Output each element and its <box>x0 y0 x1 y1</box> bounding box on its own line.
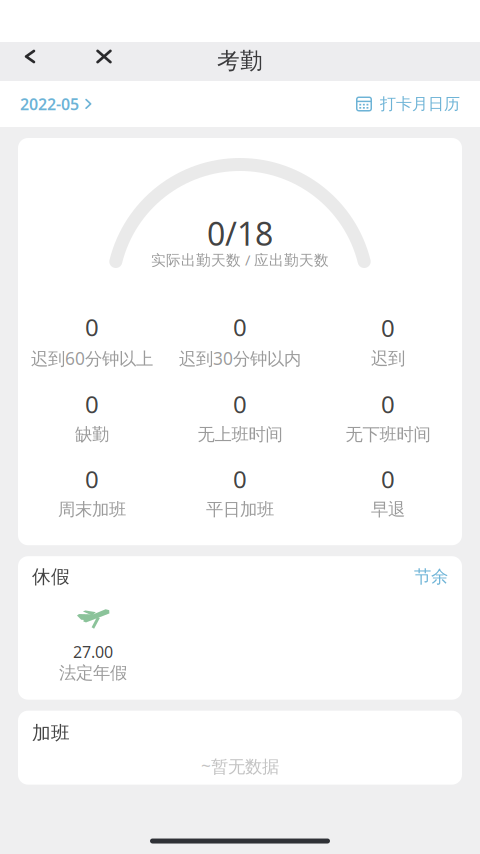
staticText: 法定年假 <box>59 662 127 684</box>
staticText: ~暂无数据 <box>201 755 279 778</box>
staticText: 0 <box>381 388 395 420</box>
staticText: 迟到 <box>371 348 405 369</box>
button[interactable]: Close <box>82 37 126 76</box>
staticText: 0 <box>85 311 99 343</box>
staticText: 加班 <box>32 722 70 745</box>
staticText: 节余 <box>414 566 448 587</box>
staticText: 缺勤 <box>75 424 109 445</box>
button[interactable]: Back <box>8 37 52 76</box>
staticText: 2022-05 <box>20 93 79 115</box>
staticText: 0 <box>233 388 247 420</box>
staticText: 周末加班 <box>58 499 126 520</box>
staticText: 0 <box>233 311 247 343</box>
staticText: 实际出勤天数 / 应出勤天数 <box>151 250 329 269</box>
staticText: 0 <box>233 463 247 495</box>
staticText: 迟到30分钟以内 <box>179 347 301 370</box>
staticText: 考勤 <box>217 47 263 75</box>
button[interactable]: 2022-05 <box>0 82 102 126</box>
staticText: 早退 <box>371 499 405 520</box>
staticText: 平日加班 <box>206 499 274 520</box>
staticText: 0/18 <box>207 212 273 254</box>
staticText: 0 <box>381 463 395 495</box>
button[interactable]: 节余 <box>414 566 448 587</box>
button[interactable]: 打卡月日历 <box>346 83 480 125</box>
staticText: 0 <box>85 463 99 495</box>
staticText: 无上班时间 <box>197 424 282 445</box>
staticText: 迟到60分钟以上 <box>31 347 153 370</box>
staticText: 0 <box>381 312 395 344</box>
staticText: 休假 <box>32 565 70 588</box>
staticText: 27.00 <box>73 641 113 662</box>
staticText: 打卡月日历 <box>380 94 460 114</box>
staticText: 无下班时间 <box>345 424 430 445</box>
staticText: 0 <box>85 388 99 420</box>
